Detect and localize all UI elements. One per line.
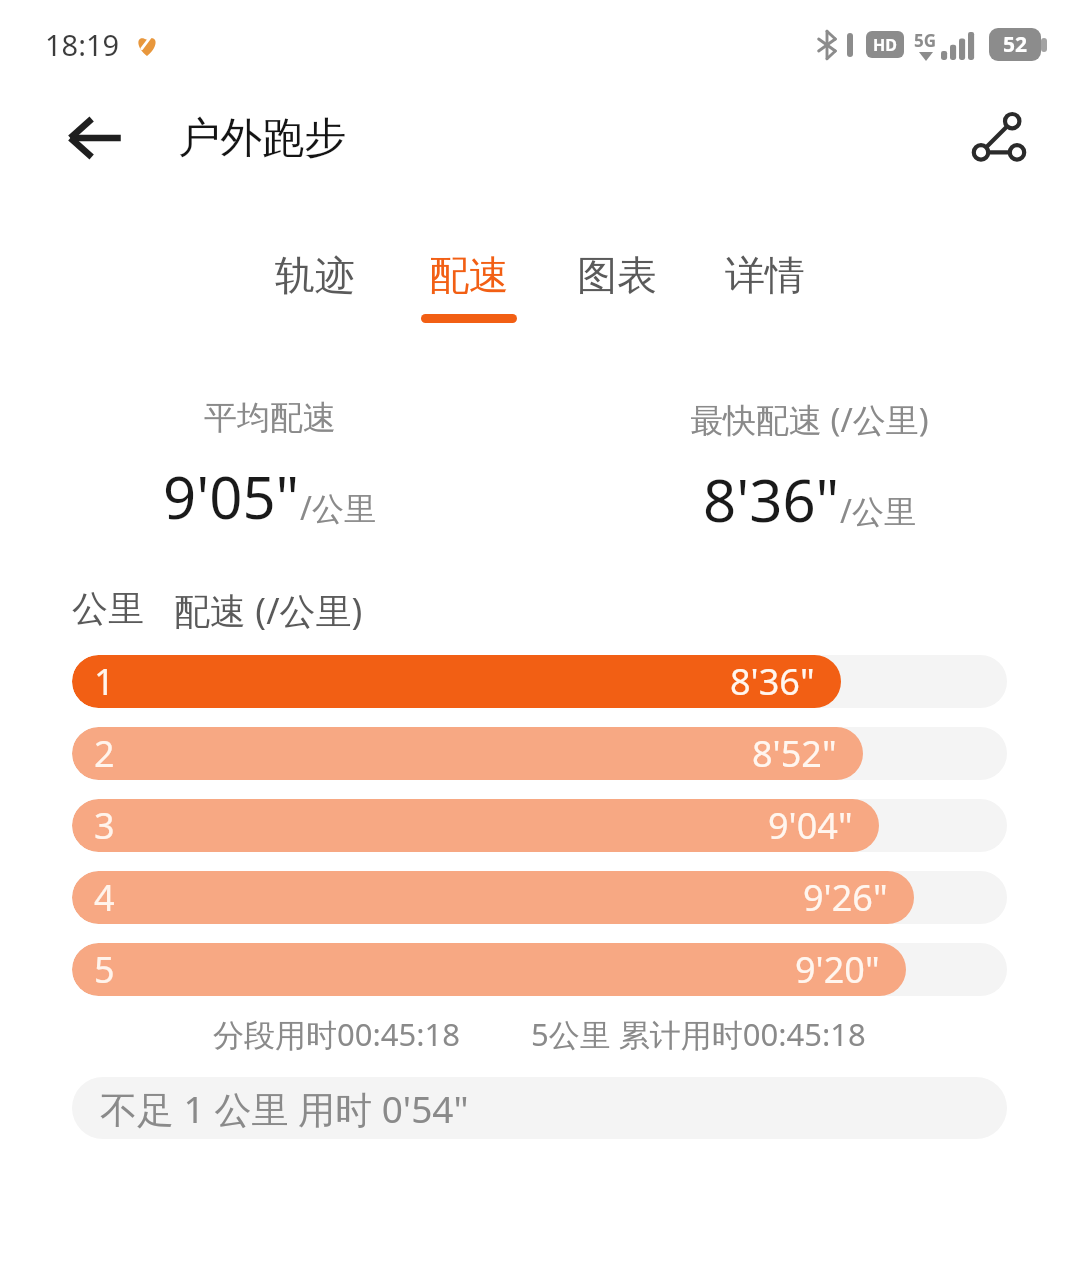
staticText: 配速 (/公里) xyxy=(174,586,363,635)
staticText: 轨迹 xyxy=(275,250,355,300)
button[interactable]: 轨迹 xyxy=(263,250,367,323)
staticText: 公里 xyxy=(72,586,144,631)
staticText: 户外跑步 xyxy=(178,112,346,165)
button[interactable]: 5 xyxy=(72,943,1007,996)
button[interactable]: Share xyxy=(959,98,1039,178)
staticText: /公里 xyxy=(300,486,376,530)
staticText: 3 xyxy=(94,801,115,850)
button[interactable]: 详情 xyxy=(713,250,817,323)
staticText: 18:19 xyxy=(45,25,120,64)
staticText: 8'36" xyxy=(730,657,815,706)
staticText: 8'52" xyxy=(752,729,837,778)
staticText: 1 xyxy=(94,657,115,706)
button[interactable]: 2 xyxy=(72,727,1007,780)
staticText: 9'20" xyxy=(795,945,880,994)
staticText: 9'05" xyxy=(163,457,300,536)
staticText: 详情 xyxy=(725,250,805,300)
button[interactable]: 1 xyxy=(72,655,1007,708)
staticText: 不足 1 公里 用时 0'54" xyxy=(100,1083,469,1134)
button[interactable]: 3 xyxy=(72,799,1007,852)
button[interactable]: 配速 xyxy=(417,250,521,323)
staticText: 分段用时00:45:18 xyxy=(213,1013,461,1055)
staticText: 平均配速 xyxy=(204,397,336,439)
staticText: 最快配速 (/公里) xyxy=(690,397,929,442)
staticText: 5G xyxy=(914,29,937,52)
staticText: 2 xyxy=(94,729,115,778)
staticText: 9'26" xyxy=(803,873,888,922)
staticText: 8'36" xyxy=(703,460,840,539)
staticText: 图表 xyxy=(577,250,657,300)
staticText: 4 xyxy=(94,873,115,922)
staticText: 9'04" xyxy=(768,801,853,850)
staticText: 配速 xyxy=(429,250,509,300)
button[interactable]: 图表 xyxy=(565,250,669,323)
staticText: 5 xyxy=(94,945,115,994)
button[interactable]: 不足 1 公里 用时 0'54" xyxy=(72,1077,1007,1139)
button[interactable]: Back xyxy=(55,98,135,178)
staticText: 52 xyxy=(1003,30,1028,59)
staticText: /公里 xyxy=(840,489,916,533)
staticText: 5公里 累计用时00:45:18 xyxy=(531,1013,866,1055)
button[interactable]: 4 xyxy=(72,871,1007,924)
staticText: HD xyxy=(873,34,897,56)
